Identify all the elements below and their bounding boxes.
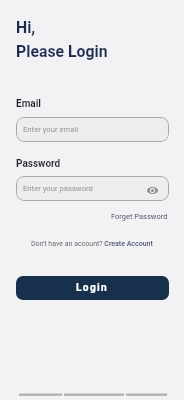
staticText: Password [16,158,61,170]
staticText: Forget Password [111,212,168,221]
staticText: Enter your email [23,125,79,134]
staticText: Don't have an account? Create Account [31,240,153,248]
staticText: Email [16,98,41,110]
staticText: Please Login [16,42,108,61]
button[interactable]: Enter your password [16,176,169,201]
button[interactable]: Enter your email [16,117,169,142]
staticText: Login [76,282,109,294]
button[interactable]: Forget Password [111,212,168,221]
button[interactable]: Login [16,276,169,300]
staticText: Hi, [16,18,36,37]
staticText: Enter your password [23,184,93,193]
button[interactable]: Don't have an account? Create Account [31,240,153,248]
